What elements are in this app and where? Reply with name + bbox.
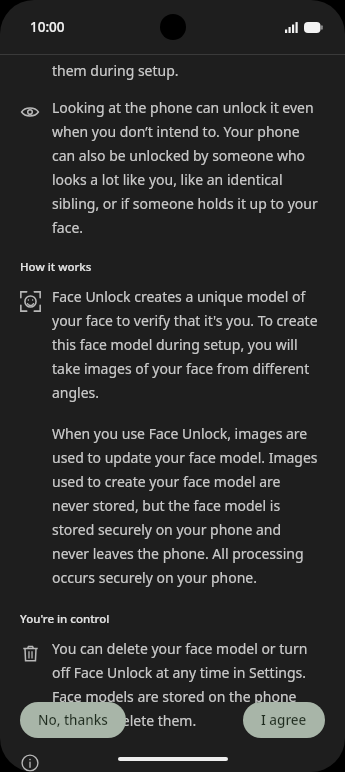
staticText: You can delete your face model or turn o… xyxy=(52,639,321,730)
other: Visibility xyxy=(19,101,41,123)
other: Information xyxy=(21,754,39,772)
staticText: Face Unlock creates a unique model of yo… xyxy=(52,287,321,402)
staticText: No, thanks xyxy=(38,711,108,729)
button[interactable]: I agree xyxy=(243,702,325,738)
staticText: 10:00 xyxy=(30,18,65,36)
other: Delete xyxy=(19,642,41,664)
other: Face scan xyxy=(19,290,41,312)
staticText: You're in control xyxy=(20,611,110,627)
staticText: How it works xyxy=(20,259,92,275)
button[interactable]: No, thanks xyxy=(20,702,126,738)
staticText: I agree xyxy=(261,711,307,729)
staticText: When you use Face Unlock, images are use… xyxy=(52,424,321,587)
staticText: Looking at the phone can unlock it even … xyxy=(52,98,321,237)
staticText: them during setup. xyxy=(52,61,179,80)
